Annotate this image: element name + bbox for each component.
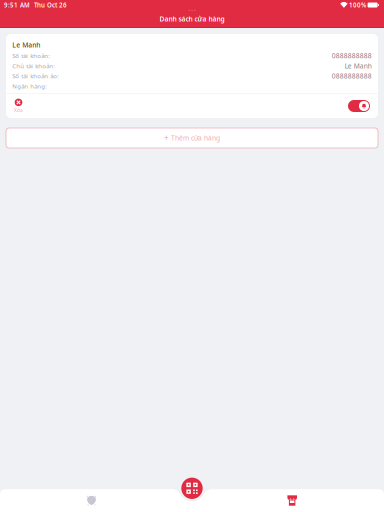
staticText: Ngân hàng:	[12, 82, 47, 90]
staticText: Danh sách cửa hàng	[159, 14, 224, 23]
staticText: 100%	[349, 1, 366, 9]
staticText: 0888888888	[332, 51, 372, 60]
button[interactable]: Quét mã QR	[180, 476, 204, 500]
staticText: Thu Oct 26	[34, 1, 67, 9]
staticText: Chủ tài khoản:	[12, 62, 55, 70]
staticText: Xóa	[14, 107, 23, 113]
staticText: 0888888888	[332, 71, 372, 81]
staticText: Thêm cửa hàng	[171, 133, 220, 143]
staticText: 9:51 AM	[4, 1, 30, 9]
staticText: Số tài khoản ảo:	[12, 72, 59, 80]
button[interactable]: Xóa	[8, 95, 29, 117]
staticText: +	[164, 133, 169, 143]
staticText: Số tài khoản:	[12, 51, 50, 60]
staticText: Le Manh	[345, 61, 372, 70]
button[interactable]: +	[6, 128, 378, 148]
button[interactable]: Bật thông báo	[342, 94, 376, 118]
button[interactable]: Trang chủ	[77, 489, 105, 512]
button[interactable]: Cửa hàng	[279, 489, 307, 512]
staticText: Le Manh	[12, 40, 40, 50]
